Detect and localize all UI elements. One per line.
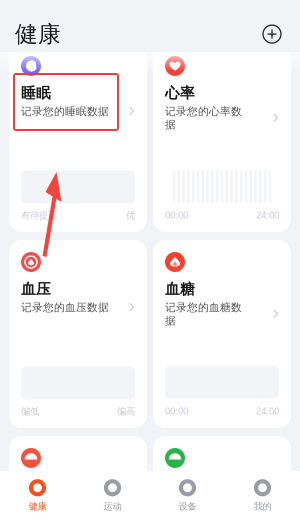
staticText: 我的 — [253, 501, 271, 512]
staticText: 记录您的心率数据 — [165, 105, 242, 131]
staticText: 血压 — [21, 280, 51, 298]
staticText: 优 — [126, 209, 135, 221]
staticText: 00:00 — [165, 405, 188, 417]
staticText: 血糖 — [165, 280, 195, 298]
staticText: 体重 — [21, 476, 51, 494]
staticText: 00:00 — [165, 209, 188, 221]
button[interactable]: 运动 — [153, 436, 291, 520]
staticText: 记录您的血压数据 — [21, 301, 109, 314]
staticText: 心率 — [165, 84, 195, 102]
staticText: 记录您的运动数据 — [165, 497, 242, 520]
staticText: 有待提高 — [21, 209, 57, 221]
button[interactable]: 血压 — [9, 240, 147, 428]
button[interactable]: 体重 — [9, 436, 147, 520]
staticText: 记录您的睡眠数据 — [21, 105, 109, 118]
staticText: 偏高 — [117, 405, 135, 417]
staticText: 偏低 — [21, 405, 39, 417]
button[interactable]: 血糖 — [153, 240, 291, 428]
staticText: 健康 — [28, 501, 46, 512]
staticText: 运动 — [165, 476, 195, 494]
staticText: 记录您的体重数据 — [21, 497, 109, 510]
staticText: 记录您的血糖数据 — [165, 301, 242, 327]
staticText: 24:00 — [256, 209, 279, 221]
button[interactable]: 添加 — [259, 21, 285, 47]
button[interactable]: 心率 — [153, 44, 291, 232]
button[interactable]: 健康 — [0, 472, 75, 519]
staticText: 24:00 — [256, 405, 279, 417]
staticText: 运动 — [103, 501, 121, 512]
staticText: 设备 — [178, 501, 196, 512]
button[interactable]: 我的 — [225, 472, 300, 519]
staticText: 睡眠 — [21, 84, 51, 102]
button[interactable]: 运动 — [75, 472, 150, 519]
button[interactable]: 设备 — [150, 472, 225, 519]
staticText: 健康 — [15, 20, 61, 48]
button[interactable]: 睡眠 — [9, 44, 147, 232]
